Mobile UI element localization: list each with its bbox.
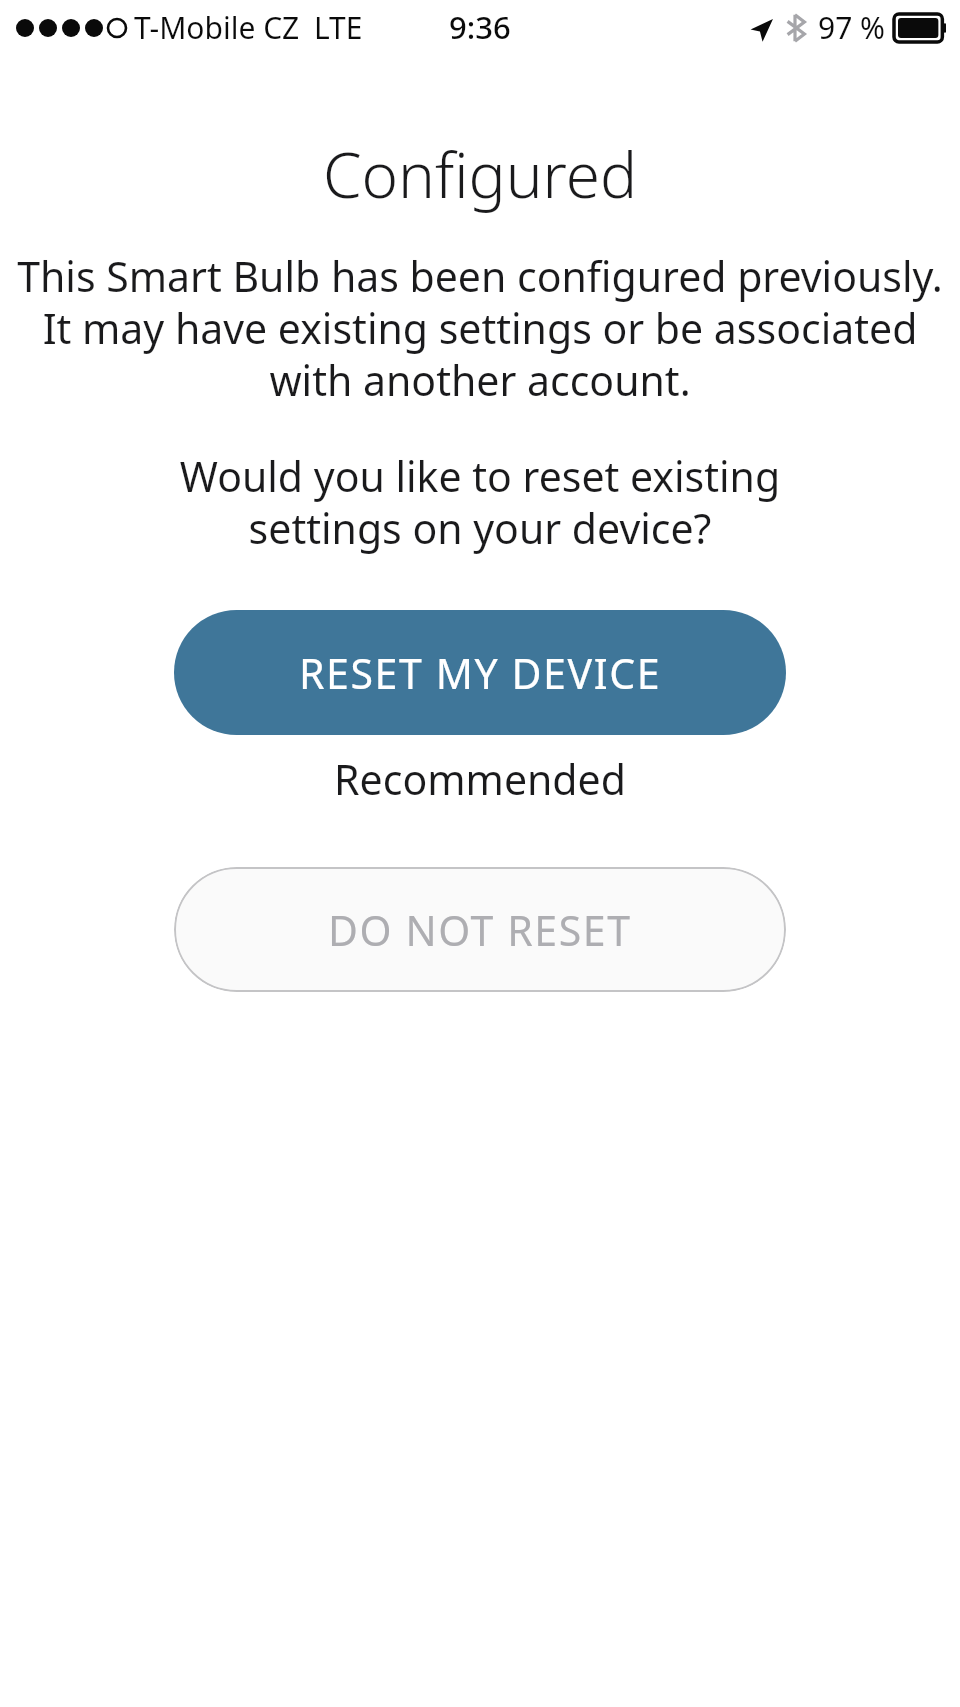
staticText: Would you like to reset existing setting…: [16, 448, 944, 556]
staticText: DO NOT RESET: [328, 902, 632, 958]
button[interactable]: DO NOT RESET: [174, 867, 786, 992]
staticText: T-Mobile CZ: [134, 7, 300, 48]
staticText: This Smart Bulb has been configured prev…: [16, 248, 944, 408]
staticText: Configured: [0, 132, 960, 216]
staticText: LTE: [314, 7, 363, 48]
staticText: RESET MY DEVICE: [299, 645, 662, 701]
staticText: 9:36: [449, 6, 511, 48]
staticText: 97 %: [818, 7, 886, 48]
staticText: Recommended: [0, 751, 960, 807]
button[interactable]: RESET MY DEVICE: [174, 610, 786, 735]
